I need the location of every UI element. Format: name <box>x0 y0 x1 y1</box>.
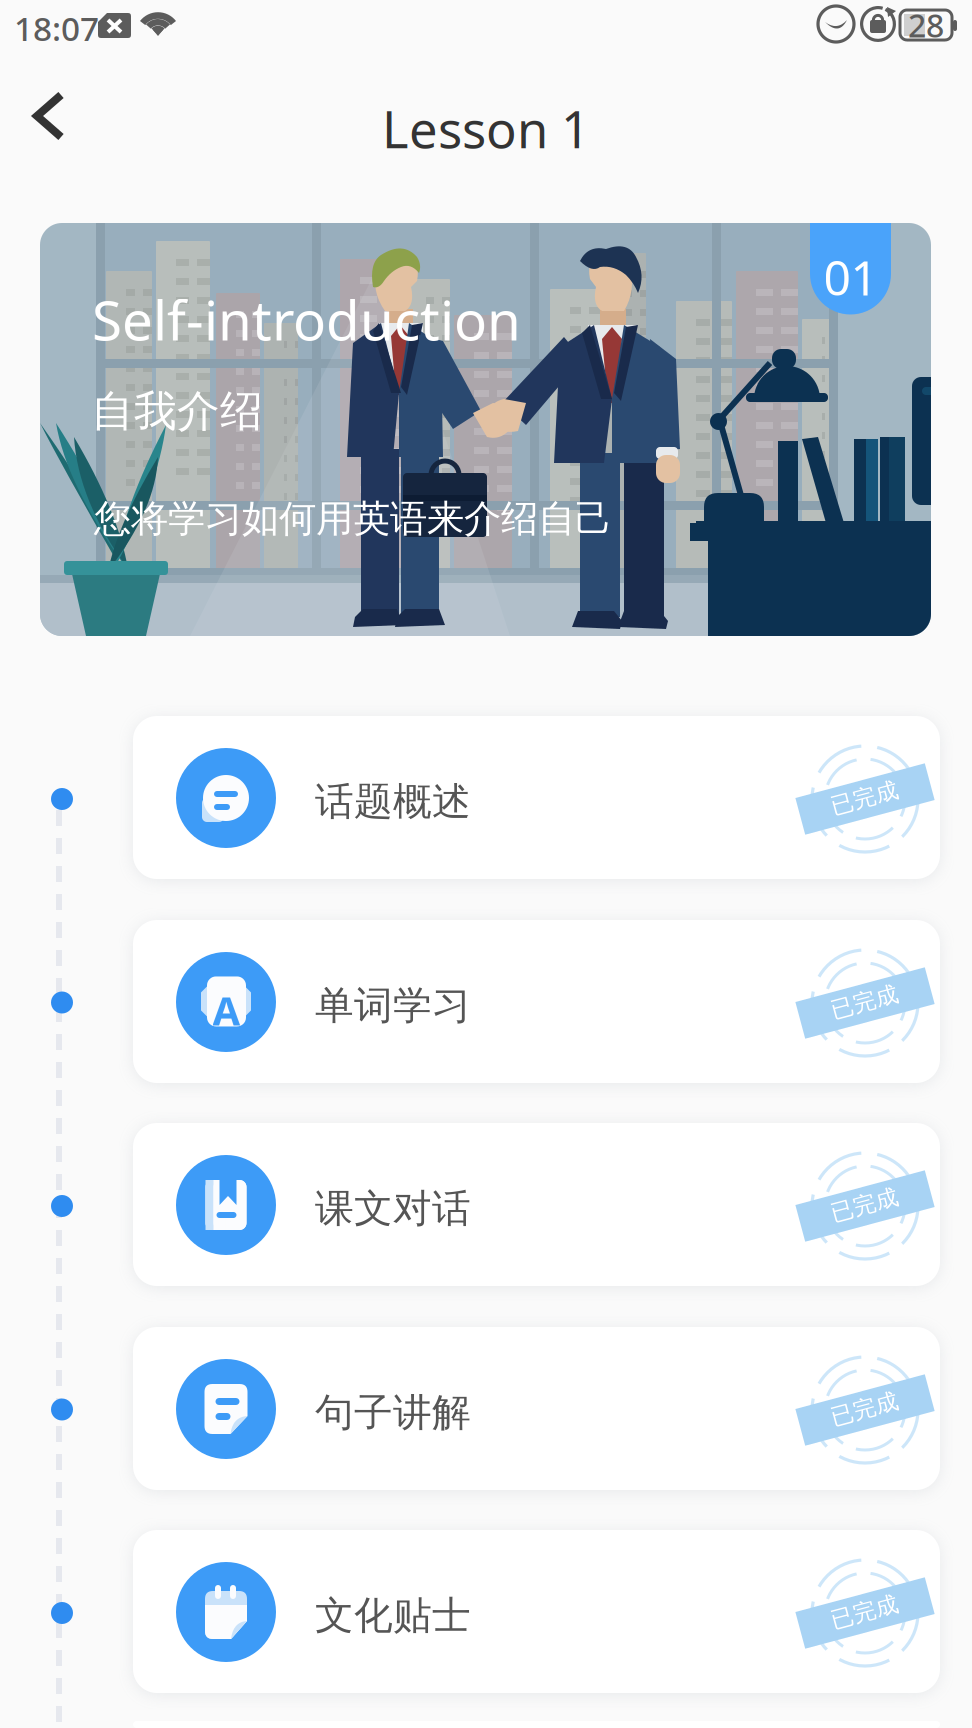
staticText: 句子讲解 <box>315 1389 471 1436</box>
staticText: 您将学习如何用英语来介绍自己 <box>94 496 612 542</box>
staticText: 文化贴士 <box>315 1592 471 1639</box>
staticText: 28 <box>908 4 944 46</box>
staticText: 已完成 <box>830 1598 899 1626</box>
button[interactable]: 已完成 <box>133 1530 940 1693</box>
staticText: 01 <box>823 245 877 309</box>
button[interactable]: 已完成 <box>133 1327 940 1490</box>
staticText: 已完成 <box>830 1395 899 1423</box>
staticText: A <box>212 983 240 1036</box>
staticText: 已完成 <box>830 784 899 812</box>
staticText: 课文对话 <box>315 1185 471 1232</box>
staticText: 已完成 <box>830 1191 899 1219</box>
button[interactable]: 已完成 <box>133 716 940 879</box>
button[interactable]: 已完成 <box>133 1123 940 1286</box>
staticText: 18:07 <box>14 6 99 50</box>
staticText: 单词学习 <box>315 982 471 1029</box>
staticText: Self-introduction <box>92 283 521 356</box>
staticText: 已完成 <box>830 988 899 1016</box>
button[interactable]: 已完成 <box>133 920 940 1083</box>
staticText: 自我介绍 <box>91 385 263 437</box>
staticText: 话题概述 <box>315 778 471 825</box>
button[interactable]: Back <box>0 67 100 167</box>
staticText: Lesson 1 <box>382 95 590 162</box>
